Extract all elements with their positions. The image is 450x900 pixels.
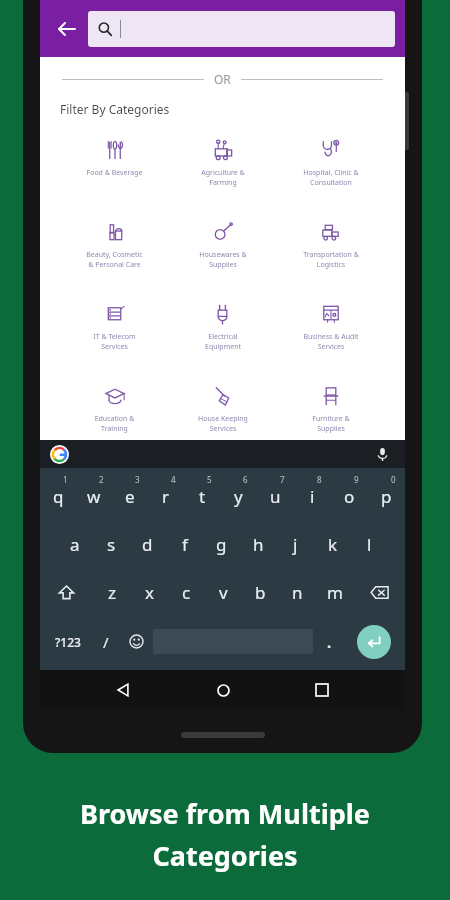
staticText: g [216, 533, 227, 556]
button[interactable]: 2 [76, 472, 112, 520]
button[interactable]: Google [50, 445, 69, 464]
button[interactable]: k [314, 520, 351, 568]
staticText: s [107, 533, 116, 556]
button[interactable]: 0 [368, 472, 405, 520]
staticText: Housewares & [173, 250, 273, 260]
staticText: y [234, 485, 243, 508]
button[interactable]: House Keeping [173, 375, 273, 443]
staticText: Beauty, Cosmetic [64, 250, 165, 260]
staticText: Logistics [281, 260, 381, 270]
staticText: Furniture & [281, 414, 381, 424]
staticText: i [310, 485, 315, 508]
staticText: t [199, 485, 206, 508]
staticText: h [253, 533, 264, 556]
button[interactable]: Enter [357, 625, 391, 659]
button[interactable]: 3 [112, 472, 148, 520]
staticText: j [293, 533, 298, 556]
staticText: Supplies [173, 260, 273, 270]
staticText: 4 [171, 474, 176, 485]
staticText: Electrical [173, 332, 273, 342]
button[interactable]: l [351, 520, 388, 568]
staticText: 1 [63, 474, 68, 485]
button[interactable]: s [93, 520, 129, 568]
staticText: o [344, 485, 355, 508]
button[interactable]: a [57, 520, 93, 568]
staticText: Filter By Categories [60, 101, 170, 117]
staticText: v [219, 581, 228, 604]
staticText: House Keeping [173, 414, 273, 424]
staticText: Consultation [281, 178, 381, 188]
staticText: Farming [173, 178, 273, 188]
button[interactable]: IT & Telecom [64, 293, 165, 361]
button[interactable]: Housewares & [173, 211, 273, 279]
button[interactable]: j [277, 520, 314, 568]
button[interactable]: 7 [257, 472, 294, 520]
staticText: x [145, 581, 154, 604]
staticText: f [182, 533, 188, 556]
button[interactable] [88, 11, 395, 47]
button[interactable]: m [316, 568, 353, 617]
staticText: 3 [135, 474, 140, 485]
staticText: Transportation & [281, 250, 381, 260]
staticText: Services [173, 424, 273, 434]
button[interactable]: Emoji [120, 617, 153, 666]
staticText: OR [214, 71, 231, 87]
button[interactable]: Beauty, Cosmetic [64, 211, 165, 279]
button[interactable]: Business & Audit [281, 293, 381, 361]
staticText: Equipment [173, 342, 273, 352]
staticText: Training [64, 424, 165, 434]
staticText: u [270, 485, 281, 508]
button[interactable]: Food & Beverage [64, 129, 165, 197]
button[interactable]: Furniture & [281, 375, 381, 443]
staticText: Browse from Multiple [80, 795, 370, 832]
button[interactable]: 6 [220, 472, 257, 520]
staticText: z [108, 581, 116, 604]
staticText: Education & [64, 414, 165, 424]
button[interactable]: Shift [40, 568, 93, 617]
staticText: / [103, 632, 109, 652]
button[interactable]: Back [106, 673, 140, 707]
staticText: . [327, 632, 332, 652]
button[interactable]: x [131, 568, 168, 617]
staticText: c [182, 581, 191, 604]
button[interactable]: g [203, 520, 240, 568]
button[interactable]: Recents [305, 673, 339, 707]
button[interactable]: v [205, 568, 242, 617]
staticText: p [381, 485, 392, 508]
button[interactable]: Electrical [173, 293, 273, 361]
button[interactable]: ?123 [44, 617, 91, 666]
staticText: m [327, 581, 343, 604]
staticText: Hospital, Clinic & [281, 168, 381, 178]
button[interactable]: h [240, 520, 277, 568]
button[interactable]: 9 [331, 472, 368, 520]
staticText: Food & Beverage [64, 168, 165, 178]
button[interactable]: b [242, 568, 279, 617]
button[interactable]: f [166, 520, 203, 568]
button[interactable]: n [279, 568, 316, 617]
button[interactable]: Home [206, 673, 240, 707]
button[interactable]: 8 [294, 472, 331, 520]
button[interactable]: Education & [64, 375, 165, 443]
button[interactable]: Voice input [371, 443, 393, 465]
button[interactable]: Transportation & [281, 211, 381, 279]
button[interactable]: . [313, 617, 346, 666]
button[interactable]: 1 [40, 472, 76, 520]
staticText: n [292, 581, 303, 604]
button[interactable]: Hospital, Clinic & [281, 129, 381, 197]
button[interactable]: Agriculture & [173, 129, 273, 197]
button[interactable]: z [93, 568, 131, 617]
button[interactable]: Back [50, 13, 82, 45]
staticText: k [328, 533, 338, 556]
staticText: Supplies [281, 424, 381, 434]
button[interactable]: / [91, 617, 120, 666]
staticText: q [53, 485, 64, 508]
button[interactable]: c [168, 568, 205, 617]
staticText: b [255, 581, 266, 604]
button[interactable]: 4 [148, 472, 184, 520]
staticText: & Personal Care [64, 260, 165, 270]
staticText: Categories [152, 837, 298, 874]
button[interactable]: 5 [184, 472, 220, 520]
button[interactable]: d [129, 520, 166, 568]
button[interactable]: Backspace [353, 568, 405, 617]
